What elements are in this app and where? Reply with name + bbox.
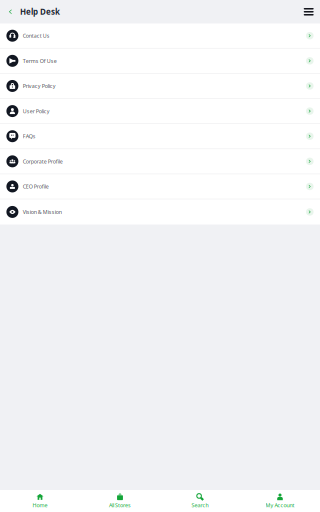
staticText: My Account xyxy=(265,502,294,509)
button[interactable]: My Account xyxy=(240,490,320,512)
staticText: All Stores xyxy=(109,502,131,509)
staticText: Vision & Mission xyxy=(23,208,62,215)
button[interactable]: User Policy xyxy=(0,99,320,124)
button[interactable]: Help Desk xyxy=(0,0,60,23)
button[interactable]: Contact Us xyxy=(0,23,320,49)
button[interactable]: Corporate Profile xyxy=(0,149,320,174)
staticText: Contact Us xyxy=(23,32,50,39)
button[interactable]: CEO Profile xyxy=(0,174,320,199)
staticText: Help Desk xyxy=(20,6,60,17)
button[interactable]: Terms Of Use xyxy=(0,49,320,74)
button[interactable]: Menu xyxy=(304,0,320,23)
staticText: Terms Of Use xyxy=(23,57,57,64)
button[interactable]: Vision & Mission xyxy=(0,199,320,224)
button[interactable]: All Stores xyxy=(80,490,160,512)
staticText: Search xyxy=(191,502,208,509)
button[interactable]: FAQs xyxy=(0,124,320,149)
staticText: Privacy Policy xyxy=(23,82,56,89)
button[interactable]: Privacy Policy xyxy=(0,74,320,99)
staticText: User Policy xyxy=(23,107,50,115)
staticText: FAQs xyxy=(23,133,36,140)
staticText: CEO Profile xyxy=(23,183,49,190)
button[interactable]: Home xyxy=(0,490,80,512)
staticText: Home xyxy=(32,502,47,509)
staticText: Corporate Profile xyxy=(23,158,63,165)
button[interactable]: Search xyxy=(160,490,240,512)
